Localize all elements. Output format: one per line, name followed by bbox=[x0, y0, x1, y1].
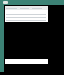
button[interactable]: Navigation rail bbox=[0, 0, 4, 72]
